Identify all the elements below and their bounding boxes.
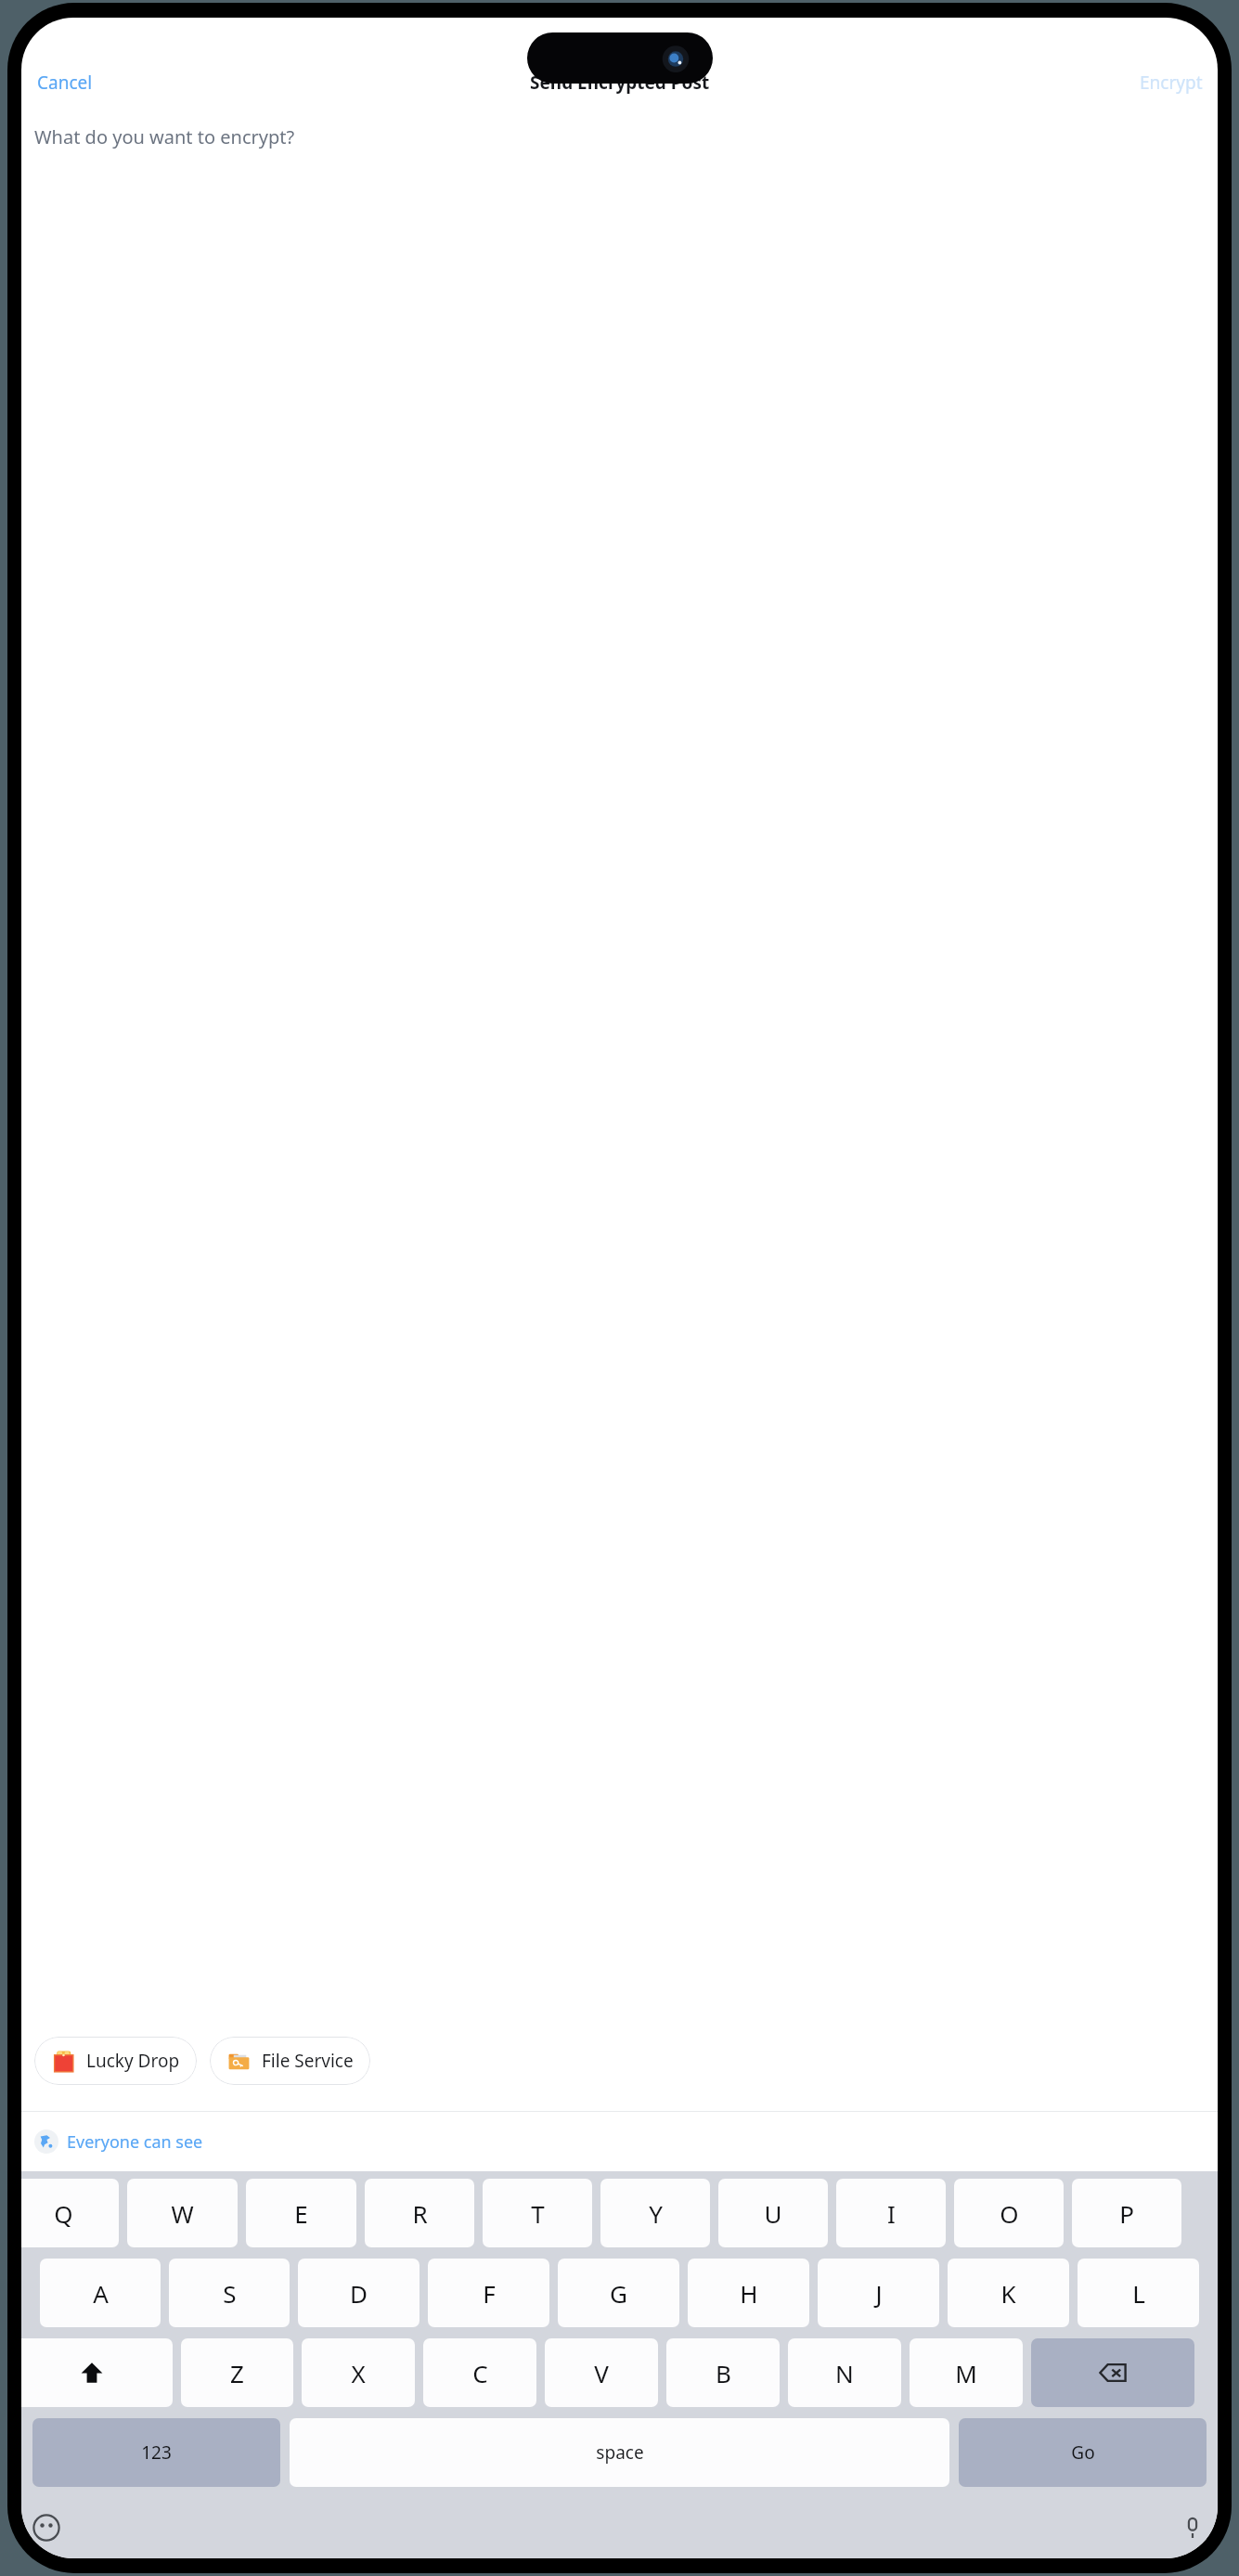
button[interactable]: Emoji bbox=[31, 2512, 62, 2544]
button[interactable]: X bbox=[302, 2338, 415, 2407]
button[interactable]: Shift bbox=[21, 2338, 173, 2407]
staticText: J bbox=[875, 2277, 883, 2310]
button[interactable]: L bbox=[1078, 2259, 1199, 2327]
staticText: M bbox=[955, 2357, 977, 2389]
staticText: space bbox=[596, 2440, 644, 2465]
staticText: W bbox=[171, 2197, 194, 2230]
button[interactable]: 123 bbox=[32, 2418, 280, 2487]
staticText: H bbox=[740, 2277, 758, 2310]
button[interactable]: G bbox=[558, 2259, 679, 2327]
staticText: A bbox=[93, 2277, 109, 2310]
button[interactable]: S bbox=[169, 2259, 290, 2327]
staticText: What do you want to encrypt? bbox=[34, 124, 295, 149]
staticText: File Service bbox=[262, 2049, 354, 2073]
button[interactable]: R bbox=[365, 2179, 474, 2247]
button[interactable]: O bbox=[954, 2179, 1064, 2247]
button[interactable]: Q bbox=[21, 2179, 119, 2247]
button[interactable]: Backspace bbox=[1031, 2338, 1194, 2407]
button[interactable]: N bbox=[788, 2338, 901, 2407]
staticText: V bbox=[594, 2357, 609, 2389]
button[interactable]: K bbox=[948, 2259, 1069, 2327]
staticText: R bbox=[412, 2197, 428, 2230]
staticText: G bbox=[610, 2277, 627, 2310]
staticText: S bbox=[223, 2277, 237, 2310]
staticText: Go bbox=[1071, 2440, 1095, 2465]
staticText: P bbox=[1119, 2197, 1134, 2230]
staticText: N bbox=[835, 2357, 854, 2389]
button[interactable]: Lucky Drop bbox=[34, 2037, 197, 2085]
button[interactable]: T bbox=[483, 2179, 592, 2247]
staticText: L bbox=[1132, 2277, 1145, 2310]
button[interactable]: J bbox=[818, 2259, 939, 2327]
button[interactable]: D bbox=[298, 2259, 419, 2327]
staticText: F bbox=[483, 2277, 496, 2310]
staticText: Encrypt bbox=[1140, 71, 1203, 95]
staticText: I bbox=[887, 2197, 896, 2230]
button[interactable]: B bbox=[666, 2338, 780, 2407]
button[interactable]: Everyone can see bbox=[21, 2112, 1218, 2171]
staticText: Send Encrypted Post bbox=[530, 71, 710, 95]
button[interactable]: A bbox=[40, 2259, 161, 2327]
button[interactable]: H bbox=[688, 2259, 809, 2327]
staticText: 123 bbox=[141, 2440, 172, 2465]
button[interactable]: M bbox=[910, 2338, 1023, 2407]
button[interactable]: File Service bbox=[210, 2037, 370, 2085]
staticText: Everyone can see bbox=[67, 2130, 203, 2154]
button[interactable]: Encrypt bbox=[1136, 67, 1207, 98]
staticText: Y bbox=[649, 2197, 663, 2230]
staticText: C bbox=[472, 2357, 488, 2389]
staticText: E bbox=[294, 2197, 308, 2230]
button[interactable]: P bbox=[1072, 2179, 1181, 2247]
button[interactable]: Z bbox=[181, 2338, 293, 2407]
staticText: B bbox=[716, 2357, 731, 2389]
button[interactable]: Y bbox=[600, 2179, 710, 2247]
button[interactable]: space bbox=[290, 2418, 949, 2487]
button[interactable]: C bbox=[423, 2338, 536, 2407]
button[interactable]: F bbox=[428, 2259, 549, 2327]
button[interactable]: I bbox=[836, 2179, 946, 2247]
button[interactable]: Cancel bbox=[33, 67, 97, 98]
button[interactable]: U bbox=[718, 2179, 828, 2247]
staticText: Lucky Drop bbox=[86, 2049, 180, 2073]
staticText: O bbox=[1000, 2197, 1019, 2230]
staticText: K bbox=[1000, 2277, 1016, 2310]
button[interactable]: V bbox=[545, 2338, 658, 2407]
staticText: T bbox=[531, 2197, 545, 2230]
staticText: D bbox=[350, 2277, 368, 2310]
staticText: Z bbox=[230, 2357, 244, 2389]
button[interactable]: E bbox=[246, 2179, 356, 2247]
staticText: U bbox=[764, 2197, 782, 2230]
button[interactable]: Go bbox=[959, 2418, 1207, 2487]
staticText: Q bbox=[54, 2197, 73, 2230]
staticText: Cancel bbox=[37, 71, 93, 95]
button[interactable]: Dictation bbox=[1177, 2512, 1208, 2544]
staticText: X bbox=[351, 2357, 366, 2389]
button[interactable]: W bbox=[127, 2179, 238, 2247]
